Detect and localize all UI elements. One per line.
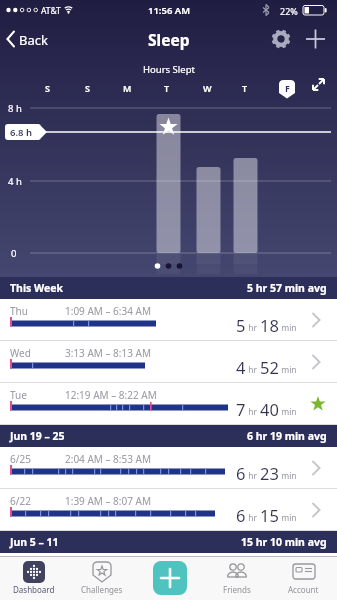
staticText: Sleep [148, 29, 190, 50]
staticText: 6.8 h [10, 126, 33, 139]
staticText: 4 h [8, 175, 22, 188]
button[interactable]: Thu [0, 299, 337, 341]
staticText: 6 hr 19 min avg [247, 429, 327, 443]
staticText: Thu [10, 304, 28, 318]
staticText: min [279, 364, 297, 376]
staticText: 1:39 AM – 8:07 AM [65, 494, 151, 508]
staticText: 6 [236, 504, 246, 526]
staticText: hr [246, 512, 260, 524]
staticText: 6 [236, 462, 246, 484]
staticText: 12:19 AM – 8:22 AM [65, 388, 157, 402]
staticText: Hours Slept [143, 63, 195, 76]
staticText: AT&T [41, 5, 61, 17]
staticText: W [203, 82, 212, 94]
button[interactable]: 6/22 [0, 489, 337, 531]
staticText: hr [246, 406, 260, 418]
button[interactable] [302, 26, 328, 52]
staticText: S [85, 82, 90, 94]
staticText: Friends [223, 584, 251, 595]
staticText: 4 [236, 356, 246, 378]
staticText: hr [246, 322, 260, 334]
staticText: 11:56 AM [148, 4, 191, 17]
staticText: 18 [260, 314, 279, 336]
staticText: Jun 19 – 25 [10, 429, 65, 443]
staticText: 52 [260, 356, 279, 378]
staticText: 3:13 AM – 8:13 AM [65, 346, 151, 360]
staticText: 2:04 AM – 8:53 AM [65, 452, 151, 466]
staticText: 22% [280, 5, 298, 17]
button[interactable] [306, 70, 332, 96]
staticText: 23 [260, 462, 279, 484]
button[interactable]: Wed [0, 341, 337, 383]
button[interactable]: Dashboard [0, 556, 68, 600]
staticText: Wed [10, 346, 31, 360]
staticText: Jun 5 – 11 [10, 535, 59, 549]
button[interactable]: Tue [0, 383, 337, 425]
staticText: Dashboard [13, 584, 55, 595]
staticText: min [279, 470, 297, 482]
staticText: min [279, 512, 297, 524]
staticText: M [123, 82, 132, 94]
staticText: min [279, 322, 297, 334]
staticText: 0 [11, 247, 17, 260]
staticText: F [285, 82, 290, 94]
staticText: 6/25 [10, 452, 31, 466]
staticText: T [164, 82, 170, 94]
staticText: Tue [10, 388, 27, 402]
staticText: 15 hr 10 min avg [241, 535, 327, 549]
button[interactable]: Account [270, 556, 337, 600]
staticText: Account [288, 584, 319, 595]
staticText: T [242, 82, 248, 94]
staticText: This Week [10, 281, 64, 295]
button[interactable] [4, 24, 59, 54]
staticText: 5 hr 57 min avg [247, 281, 327, 295]
button[interactable] [153, 561, 187, 595]
staticText: 40 [260, 398, 279, 420]
staticText: 6/22 [10, 494, 31, 508]
button[interactable] [268, 26, 294, 52]
staticText: 5 [236, 314, 246, 336]
staticText: S [45, 82, 50, 94]
staticText: Back [19, 31, 48, 49]
staticText: 15 [260, 504, 279, 526]
staticText: hr [246, 470, 260, 482]
staticText: Challenges [81, 584, 123, 595]
button[interactable]: Challenges [68, 556, 136, 600]
button[interactable]: Friends [203, 556, 270, 600]
staticText: 1:09 AM – 6:34 AM [65, 304, 151, 318]
staticText: 8 h [8, 102, 22, 115]
staticText: min [279, 406, 297, 418]
button[interactable]: 6/25 [0, 447, 337, 489]
staticText: 7 [236, 398, 246, 420]
staticText: hr [246, 364, 260, 376]
